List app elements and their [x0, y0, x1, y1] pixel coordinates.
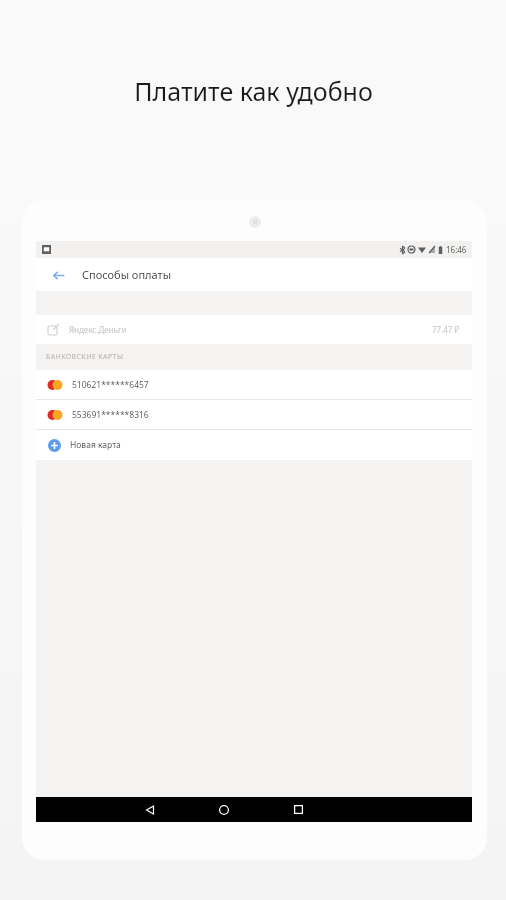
staticText: 16:46	[446, 244, 467, 255]
staticText: БАНКОВСКИЕ КАРТЫ	[46, 352, 124, 362]
button[interactable]: Новая карта	[36, 430, 472, 460]
staticText: Платите как удобно	[134, 74, 373, 108]
button[interactable]: Recent apps	[276, 797, 320, 822]
staticText: Яндекс.Деньги	[69, 324, 127, 335]
button[interactable]: Home	[202, 797, 246, 822]
staticText: 553691******8316	[72, 409, 149, 421]
staticText: Новая карта	[70, 439, 121, 451]
staticText: 77.47 ₽	[432, 324, 460, 335]
button[interactable]: Яндекс.Деньги	[36, 315, 472, 344]
button[interactable]: 553691******8316	[36, 400, 472, 429]
button[interactable]: Back	[128, 797, 172, 822]
button[interactable]: 510621******6457	[36, 370, 472, 399]
staticText: 510621******6457	[72, 379, 149, 391]
button[interactable]: Back	[46, 263, 70, 287]
staticText: Способы оплаты	[82, 267, 171, 282]
